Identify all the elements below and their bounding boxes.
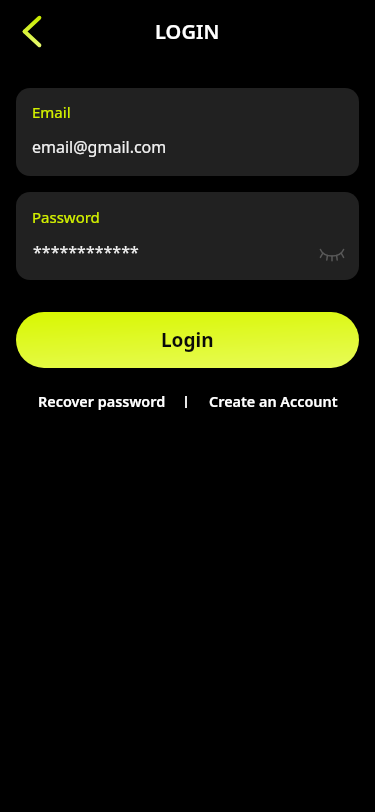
button[interactable]: Show password [312, 236, 352, 276]
button[interactable]: Password [16, 192, 359, 280]
button[interactable]: Email [16, 88, 359, 176]
staticText: Create an Account [209, 392, 338, 412]
staticText: ************ [33, 241, 139, 263]
staticText: Email [32, 102, 71, 122]
staticText: Recover password [38, 392, 166, 412]
button[interactable]: Recover password [34, 389, 166, 415]
staticText: Login [161, 327, 214, 353]
staticText: LOGIN [155, 18, 220, 45]
button[interactable]: Create an Account [209, 389, 342, 415]
staticText: email@gmail.com [32, 136, 167, 158]
staticText: Password [32, 207, 100, 227]
button[interactable]: Back [9, 9, 53, 53]
button[interactable]: Login [16, 312, 359, 368]
